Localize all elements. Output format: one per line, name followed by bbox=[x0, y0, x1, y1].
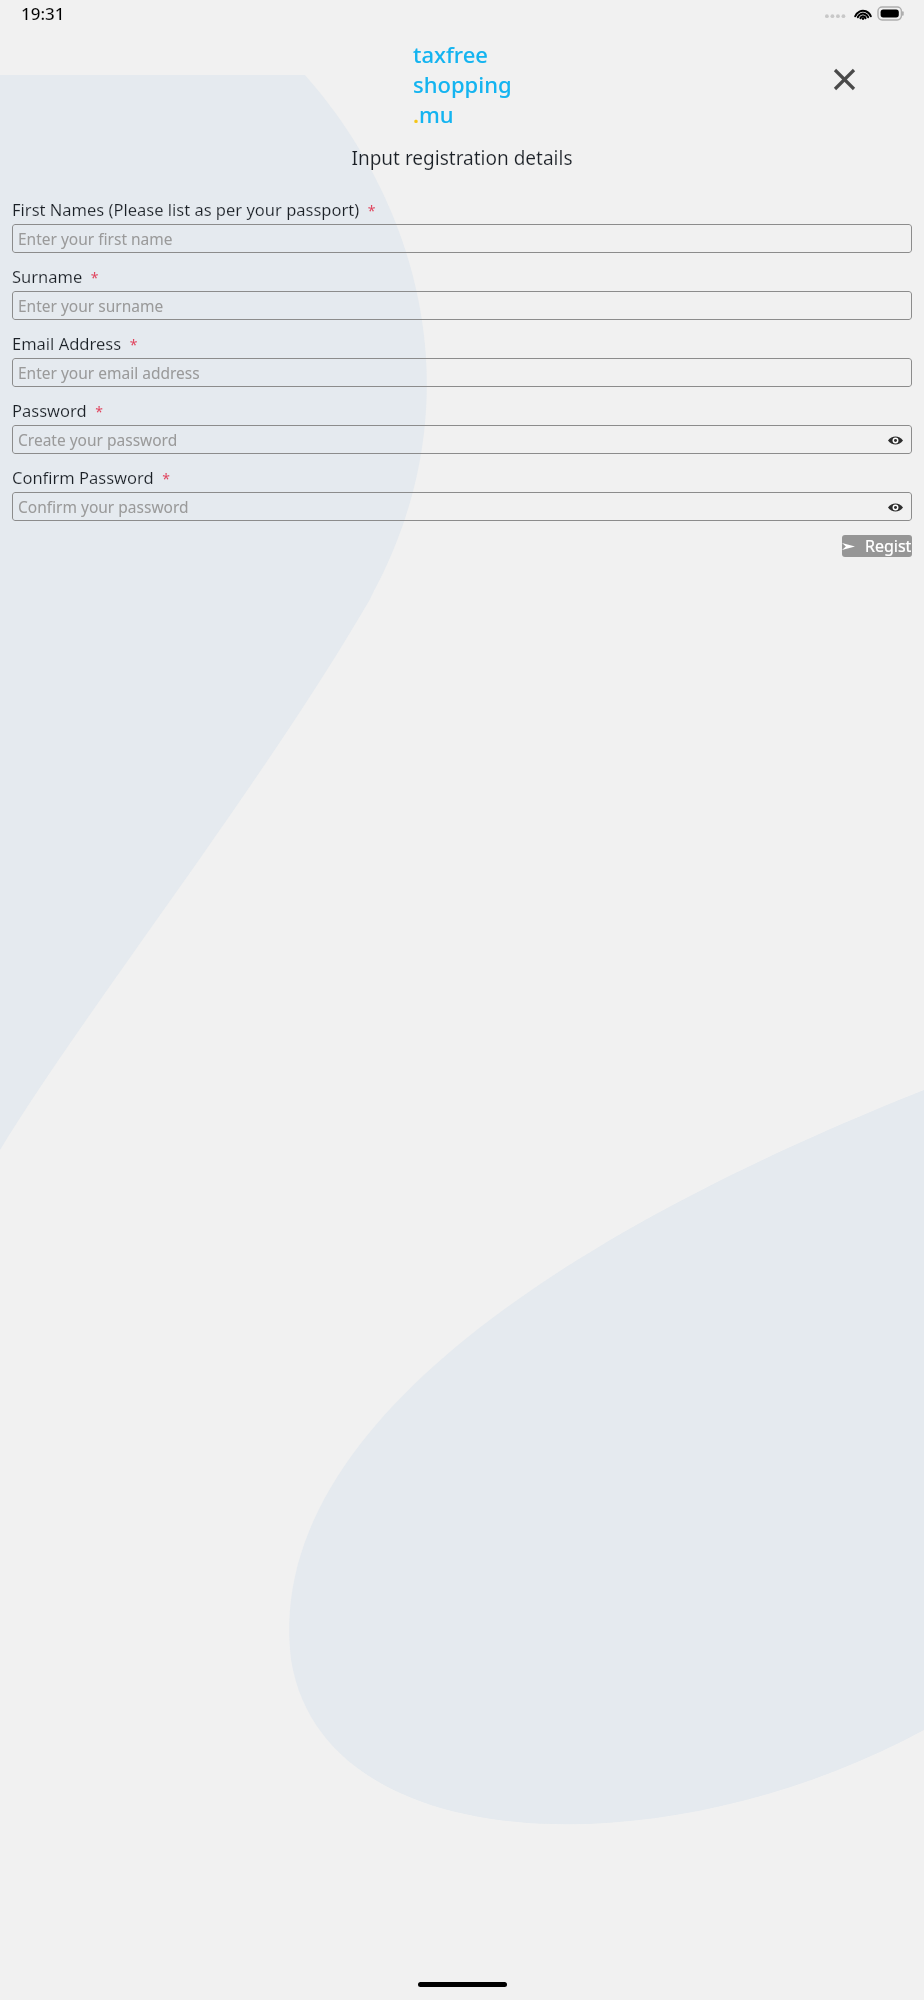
staticText: 19:31 bbox=[21, 2, 65, 25]
staticText: Surname * bbox=[12, 265, 99, 287]
staticText: Confirm Password * bbox=[12, 466, 170, 488]
button[interactable]: Register bbox=[842, 535, 912, 557]
button[interactable]: Enter your email address bbox=[12, 358, 912, 387]
staticText: Email Address * bbox=[12, 332, 138, 354]
button[interactable]: Enter your first name bbox=[12, 224, 912, 253]
staticText: Confirm your password bbox=[18, 496, 189, 517]
button[interactable]: Enter your surname bbox=[12, 291, 912, 320]
staticText: taxfree bbox=[413, 39, 488, 69]
staticText: Enter your surname bbox=[18, 295, 164, 316]
staticText: First Names (Please list as per your pas… bbox=[12, 198, 376, 220]
button[interactable]: Show password bbox=[885, 497, 905, 517]
staticText: Enter your email address bbox=[18, 362, 200, 383]
staticText: Register bbox=[865, 535, 912, 557]
button[interactable]: Close bbox=[827, 62, 861, 96]
staticText: Create your password bbox=[18, 429, 178, 450]
staticText: Input registration details bbox=[0, 145, 924, 171]
button[interactable]: Create your password bbox=[12, 425, 912, 454]
staticText: .mu bbox=[413, 99, 454, 125]
staticText: shopping bbox=[413, 69, 512, 99]
button[interactable]: Confirm your password bbox=[12, 492, 912, 521]
button[interactable]: Show password bbox=[885, 430, 905, 450]
staticText: Enter your first name bbox=[18, 228, 173, 249]
staticText: Password * bbox=[12, 399, 103, 421]
